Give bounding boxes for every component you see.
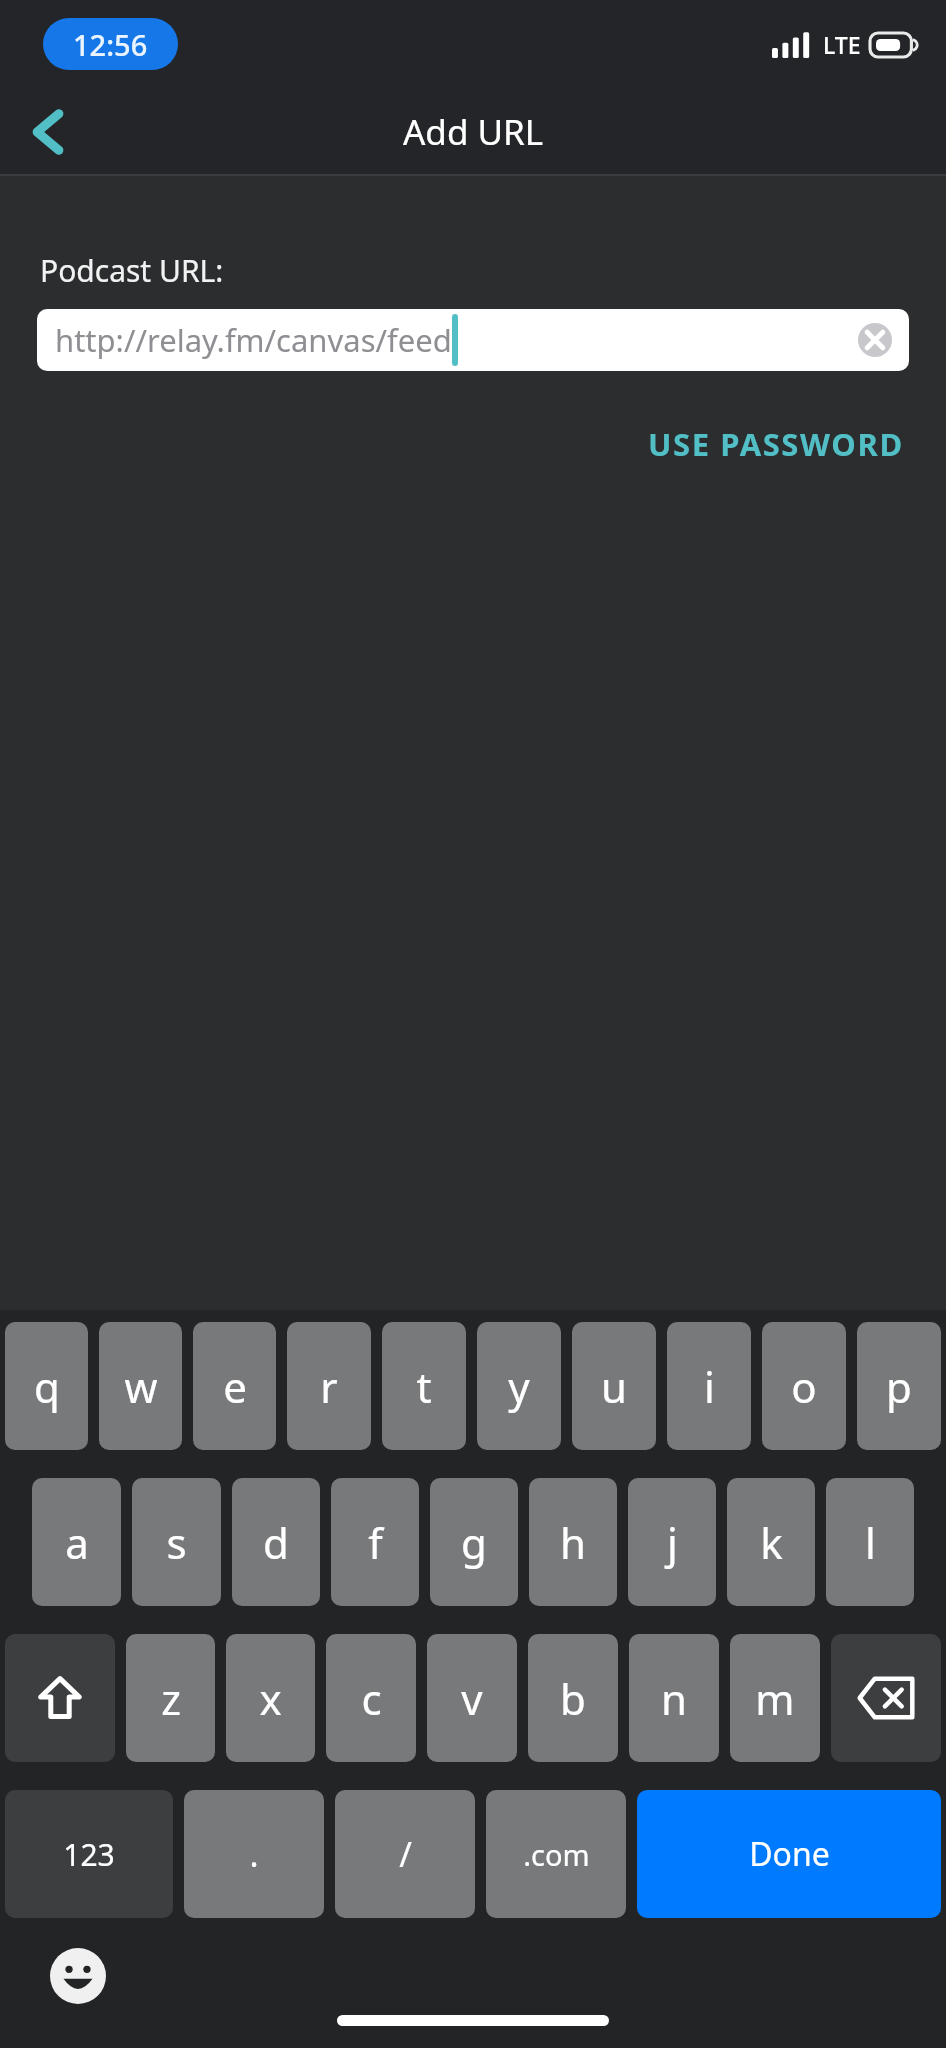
button[interactable]: j [628, 1478, 716, 1606]
staticText: j [667, 1514, 678, 1571]
staticText: h [560, 1514, 586, 1571]
button[interactable]: y [477, 1322, 561, 1450]
button[interactable]: f [331, 1478, 419, 1606]
button[interactable]: u [572, 1322, 656, 1450]
button[interactable]: Emoji keyboard [50, 1948, 106, 2004]
staticText: / [399, 1831, 412, 1877]
button[interactable]: w [99, 1322, 182, 1450]
staticText: e [223, 1358, 247, 1415]
staticText: p [886, 1358, 912, 1415]
staticText: k [760, 1514, 783, 1571]
button[interactable]: v [427, 1634, 517, 1762]
button[interactable]: n [629, 1634, 719, 1762]
button[interactable]: .com [486, 1790, 626, 1918]
button[interactable]: Back [0, 88, 96, 176]
staticText: m [755, 1670, 795, 1727]
staticText: a [65, 1514, 89, 1571]
staticText: n [661, 1670, 687, 1727]
staticText: o [791, 1358, 817, 1415]
button[interactable]: z [126, 1634, 215, 1762]
staticText: . [249, 1831, 259, 1877]
button[interactable]: 123 [5, 1790, 173, 1918]
staticText: USE PASSWORD [648, 423, 904, 465]
staticText: r [320, 1358, 338, 1415]
button[interactable]: m [730, 1634, 820, 1762]
button[interactable]: / [335, 1790, 475, 1918]
staticText: 123 [63, 1834, 115, 1875]
button[interactable]: a [32, 1478, 121, 1606]
staticText: .com [523, 1835, 590, 1874]
staticText: Done [749, 1832, 830, 1876]
button[interactable]: k [727, 1478, 815, 1606]
staticText: http://relay.fm/canvas/feed [55, 319, 452, 361]
staticText: b [560, 1670, 586, 1727]
button[interactable]: . [184, 1790, 324, 1918]
button[interactable]: q [5, 1322, 88, 1450]
staticText: w [124, 1358, 158, 1415]
staticText: x [259, 1670, 282, 1727]
staticText: s [166, 1514, 187, 1571]
button[interactable]: t [382, 1322, 466, 1450]
staticText: Add URL [403, 108, 544, 156]
staticText: u [601, 1358, 627, 1415]
button[interactable]: h [529, 1478, 617, 1606]
button[interactable]: d [232, 1478, 320, 1606]
button[interactable]: Done [637, 1790, 941, 1918]
staticText: q [34, 1358, 60, 1415]
button[interactable]: b [528, 1634, 618, 1762]
staticText: g [461, 1514, 487, 1571]
button[interactable]: g [430, 1478, 518, 1606]
staticText: c [361, 1670, 382, 1727]
staticText: LTE [823, 29, 861, 60]
button[interactable]: s [132, 1478, 221, 1606]
staticText: t [416, 1358, 432, 1415]
staticText: y [508, 1358, 530, 1415]
staticText: d [263, 1514, 289, 1571]
button[interactable]: e [193, 1322, 276, 1450]
staticText: z [161, 1670, 181, 1727]
button[interactable]: o [762, 1322, 846, 1450]
staticText: f [368, 1514, 383, 1571]
staticText: i [704, 1358, 715, 1415]
button[interactable]: Shift [5, 1634, 115, 1762]
button[interactable]: p [857, 1322, 941, 1450]
button[interactable]: c [326, 1634, 416, 1762]
button[interactable]: r [287, 1322, 371, 1450]
staticText: v [461, 1670, 483, 1727]
button[interactable]: Clear text [855, 320, 895, 360]
staticText: Podcast URL: [40, 250, 224, 291]
staticText: l [865, 1514, 876, 1571]
button[interactable]: Backspace [831, 1634, 941, 1762]
button[interactable]: http://relay.fm/canvas/feed [37, 309, 909, 371]
button[interactable]: x [226, 1634, 315, 1762]
staticText: 12:56 [73, 25, 148, 64]
button[interactable]: l [826, 1478, 914, 1606]
button[interactable]: i [667, 1322, 751, 1450]
button[interactable]: USE PASSWORD [640, 415, 912, 473]
